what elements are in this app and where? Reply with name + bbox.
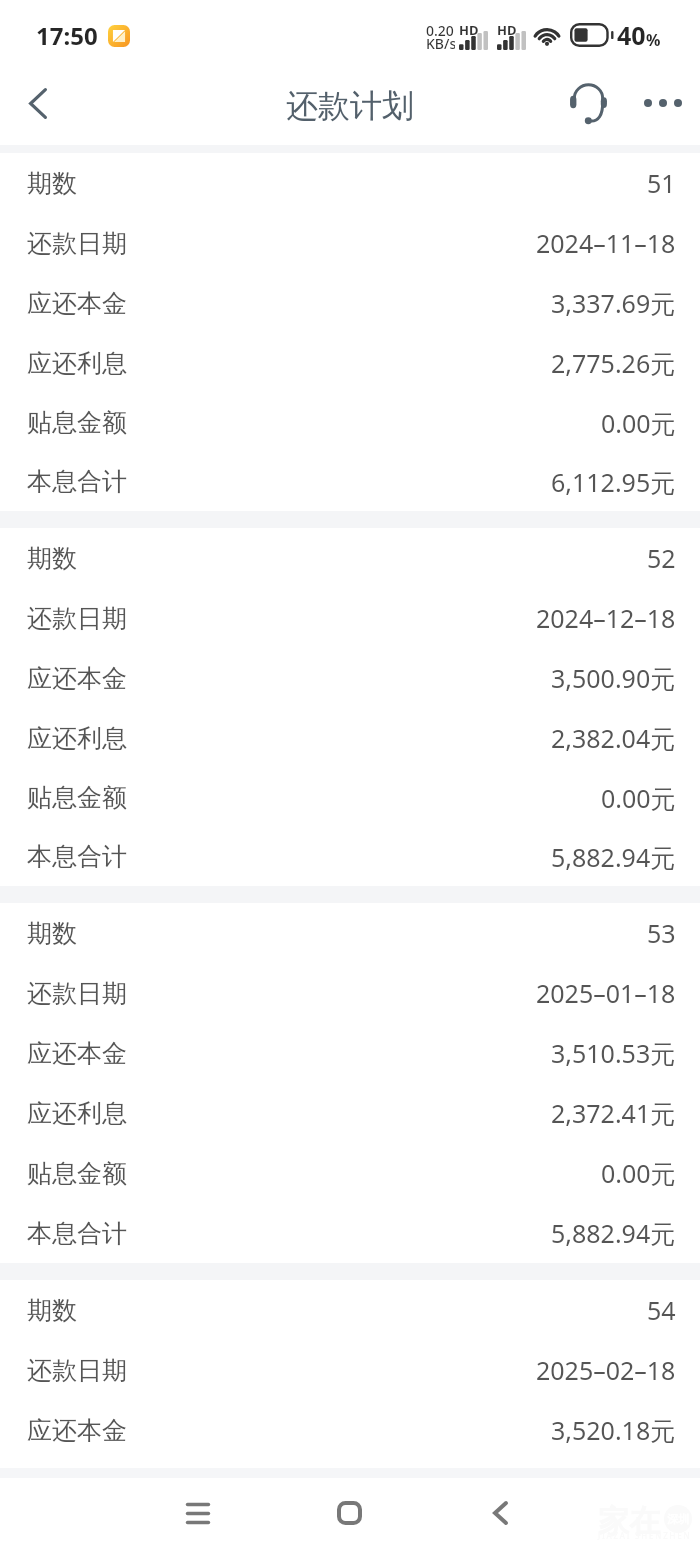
button[interactable]: 贴息金额: [0, 768, 700, 827]
staticText: 2025–02–18: [536, 1353, 676, 1387]
button[interactable]: 应还本金: [0, 273, 700, 333]
staticText: 3,520.18元: [551, 1413, 676, 1447]
button[interactable]: 还款日期: [0, 1340, 700, 1400]
staticText: 5,882.94元: [551, 1216, 676, 1250]
staticText: 0.00元: [601, 1156, 676, 1190]
staticText: 0.20: [426, 21, 454, 40]
staticText: 40: [617, 18, 646, 52]
staticText: 53: [647, 916, 676, 950]
button[interactable]: 还款日期: [0, 588, 700, 648]
button[interactable]: Back: [9, 75, 66, 132]
staticText: 期数: [27, 918, 77, 949]
staticText: 6,112.95元: [551, 465, 676, 499]
staticText: 应还本金: [27, 1038, 127, 1069]
staticText: 本息合计: [27, 841, 127, 872]
staticText: 3,510.53元: [551, 1036, 676, 1070]
staticText: 还款日期: [27, 1355, 127, 1386]
staticText: 期数: [27, 1295, 77, 1326]
staticText: 51: [647, 166, 676, 200]
staticText: 17:50: [36, 19, 98, 52]
staticText: 0.00元: [601, 781, 676, 815]
staticText: 还款计划: [286, 86, 414, 126]
staticText: 贴息金额: [27, 1158, 127, 1189]
staticText: 还款日期: [27, 228, 127, 259]
button[interactable]: 期数: [0, 528, 700, 588]
staticText: 2024–11–18: [536, 226, 676, 260]
staticText: 3,337.69元: [551, 286, 676, 320]
staticText: 2,372.41元: [551, 1096, 676, 1130]
staticText: 2,382.04元: [551, 721, 676, 755]
button[interactable]: 应还利息: [0, 1083, 700, 1143]
button[interactable]: 还款日期: [0, 963, 700, 1023]
button[interactable]: 应还本金: [0, 1400, 700, 1460]
button[interactable]: 应还本金: [0, 1023, 700, 1083]
staticText: 应还利息: [27, 1098, 127, 1129]
staticText: 应还利息: [27, 723, 127, 754]
button[interactable]: 本息合计: [0, 827, 700, 886]
staticText: 期数: [27, 168, 77, 199]
staticText: HD: [459, 21, 479, 39]
staticText: 贴息金额: [27, 407, 127, 438]
button[interactable]: Customer service: [558, 73, 618, 133]
button[interactable]: 本息合计: [0, 1203, 700, 1263]
staticText: 54: [647, 1293, 676, 1327]
staticText: 应还本金: [27, 663, 127, 694]
button[interactable]: 期数: [0, 1280, 700, 1340]
button[interactable]: 期数: [0, 153, 700, 213]
staticText: 本息合计: [27, 466, 127, 497]
button[interactable]: 应还本金: [0, 648, 700, 708]
staticText: HD: [497, 21, 517, 39]
staticText: 5,882.94元: [551, 840, 676, 874]
button[interactable]: Recents: [158, 1473, 238, 1553]
button[interactable]: More options: [632, 72, 694, 134]
staticText: 应还利息: [27, 348, 127, 379]
staticText: 2,775.26元: [551, 346, 676, 380]
button[interactable]: Home: [309, 1473, 389, 1553]
staticText: 还款日期: [27, 978, 127, 1009]
staticText: 2025–01–18: [536, 976, 676, 1010]
staticText: 本息合计: [27, 1218, 127, 1249]
button[interactable]: 本息合计: [0, 452, 700, 511]
staticText: 应还本金: [27, 1415, 127, 1446]
staticText: 应还本金: [27, 288, 127, 319]
staticText: 还款日期: [27, 603, 127, 634]
staticText: 贴息金额: [27, 782, 127, 813]
staticText: 52: [647, 541, 676, 575]
staticText: 期数: [27, 543, 77, 574]
button[interactable]: 还款日期: [0, 213, 700, 273]
staticText: 2024–12–18: [536, 601, 676, 635]
button[interactable]: 应还利息: [0, 708, 700, 768]
staticText: %: [646, 29, 661, 51]
button[interactable]: 期数: [0, 903, 700, 963]
button[interactable]: 贴息金额: [0, 393, 700, 452]
button[interactable]: 应还利息: [0, 333, 700, 393]
button[interactable]: Back: [460, 1473, 540, 1553]
button[interactable]: 贴息金额: [0, 1143, 700, 1203]
staticText: KB/s: [426, 34, 455, 53]
staticText: 3,500.90元: [551, 661, 676, 695]
staticText: 0.00元: [601, 406, 676, 440]
